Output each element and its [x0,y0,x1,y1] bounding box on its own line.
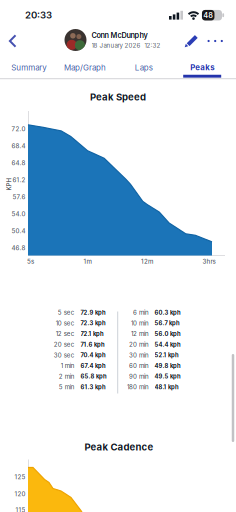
staticText: 71.6 [80,341,92,348]
staticText: kph [95,352,106,359]
staticText: 1 min [61,362,75,369]
staticText: Laps [135,63,153,72]
staticText: 60.3 [154,309,168,316]
staticText: kph [95,383,106,391]
staticText: 48 [203,11,213,20]
staticText: 3hrs [202,258,215,265]
staticText: 10 sec [56,319,75,327]
button[interactable]: Laps [124,59,164,75]
staticText: 12 min [131,330,149,338]
staticText: 54.0 [11,210,25,218]
staticText: 65.8 [80,373,94,380]
staticText: 18 January 2026 12:32 [91,42,160,49]
staticText: 72.9 [80,309,93,316]
staticText: 61.3 [80,383,93,391]
staticText: 50.4 [11,227,25,235]
staticText: kph [168,352,179,359]
staticText: kph [95,309,106,316]
staticText: 6 min [133,309,149,316]
staticText: 72.1 [80,330,91,337]
staticText: kph [93,330,104,337]
staticText: Map/Graph [64,63,106,72]
button[interactable]: Summary [5,59,53,75]
staticText: 72.3 [80,320,93,327]
staticText: 60 min [129,362,149,369]
staticText: kph [94,341,105,348]
staticText: kph [170,341,181,348]
staticText: 61.2 [12,176,25,184]
button[interactable]: Conn McDunphy [64,29,177,51]
staticText: 70.4 [80,352,93,359]
staticText: KPH [2,180,15,188]
staticText: 10 min [131,319,149,327]
staticText: 30 min [129,351,149,359]
staticText: 68.4 [11,142,25,150]
staticText: kph [95,320,106,327]
staticText: kph [170,362,181,369]
staticText: 46.8 [11,244,25,252]
staticText: 5 min [59,383,75,391]
staticText: 20:33 [25,9,52,21]
staticText: kph [170,309,181,316]
staticText: 12m [141,258,153,265]
staticText: Peak Cadence [84,441,153,453]
staticText: kph [170,330,181,337]
button[interactable]: Map/Graph [58,59,112,75]
staticText: 125 [14,473,25,481]
staticText: kph [168,383,179,391]
staticText: 180 min [127,383,149,391]
staticText: 2 min [59,373,75,380]
staticText: 67.4 [80,362,93,369]
button[interactable]: Edit [181,30,201,50]
staticText: Peaks [190,63,214,72]
staticText: 54.4 [154,341,168,348]
staticText: Conn McDunphy [91,31,147,40]
staticText: 49.5 [154,373,168,380]
staticText: 72.0 [11,125,25,133]
staticText: 1m [83,258,91,265]
staticText: 20 min [129,341,149,348]
staticText: 64.8 [11,159,25,167]
staticText: kph [169,320,180,327]
button[interactable]: Peaks [180,59,224,75]
staticText: Peak Speed [90,91,146,103]
staticText: 30 sec [54,351,75,359]
button[interactable]: More [205,33,225,49]
staticText: 57.6 [12,193,25,201]
staticText: 120 [14,490,25,498]
staticText: 48.1 [154,383,166,391]
staticText: 52.1 [154,352,166,359]
staticText: 115 [15,506,25,512]
staticText: kph [95,362,106,369]
button[interactable]: Back [0,26,24,56]
staticText: 56.0 [154,330,168,337]
staticText: Summary [11,63,46,72]
staticText: 12 sec [56,330,75,338]
staticText: 56.7 [154,320,167,327]
staticText: kph [170,373,181,380]
staticText: 20 sec [54,341,75,348]
staticText: 49.8 [154,362,168,369]
staticText: 5 sec [58,309,75,316]
staticText: kph [96,373,107,380]
staticText: 90 min [129,373,149,380]
staticText: 5s [27,258,34,265]
